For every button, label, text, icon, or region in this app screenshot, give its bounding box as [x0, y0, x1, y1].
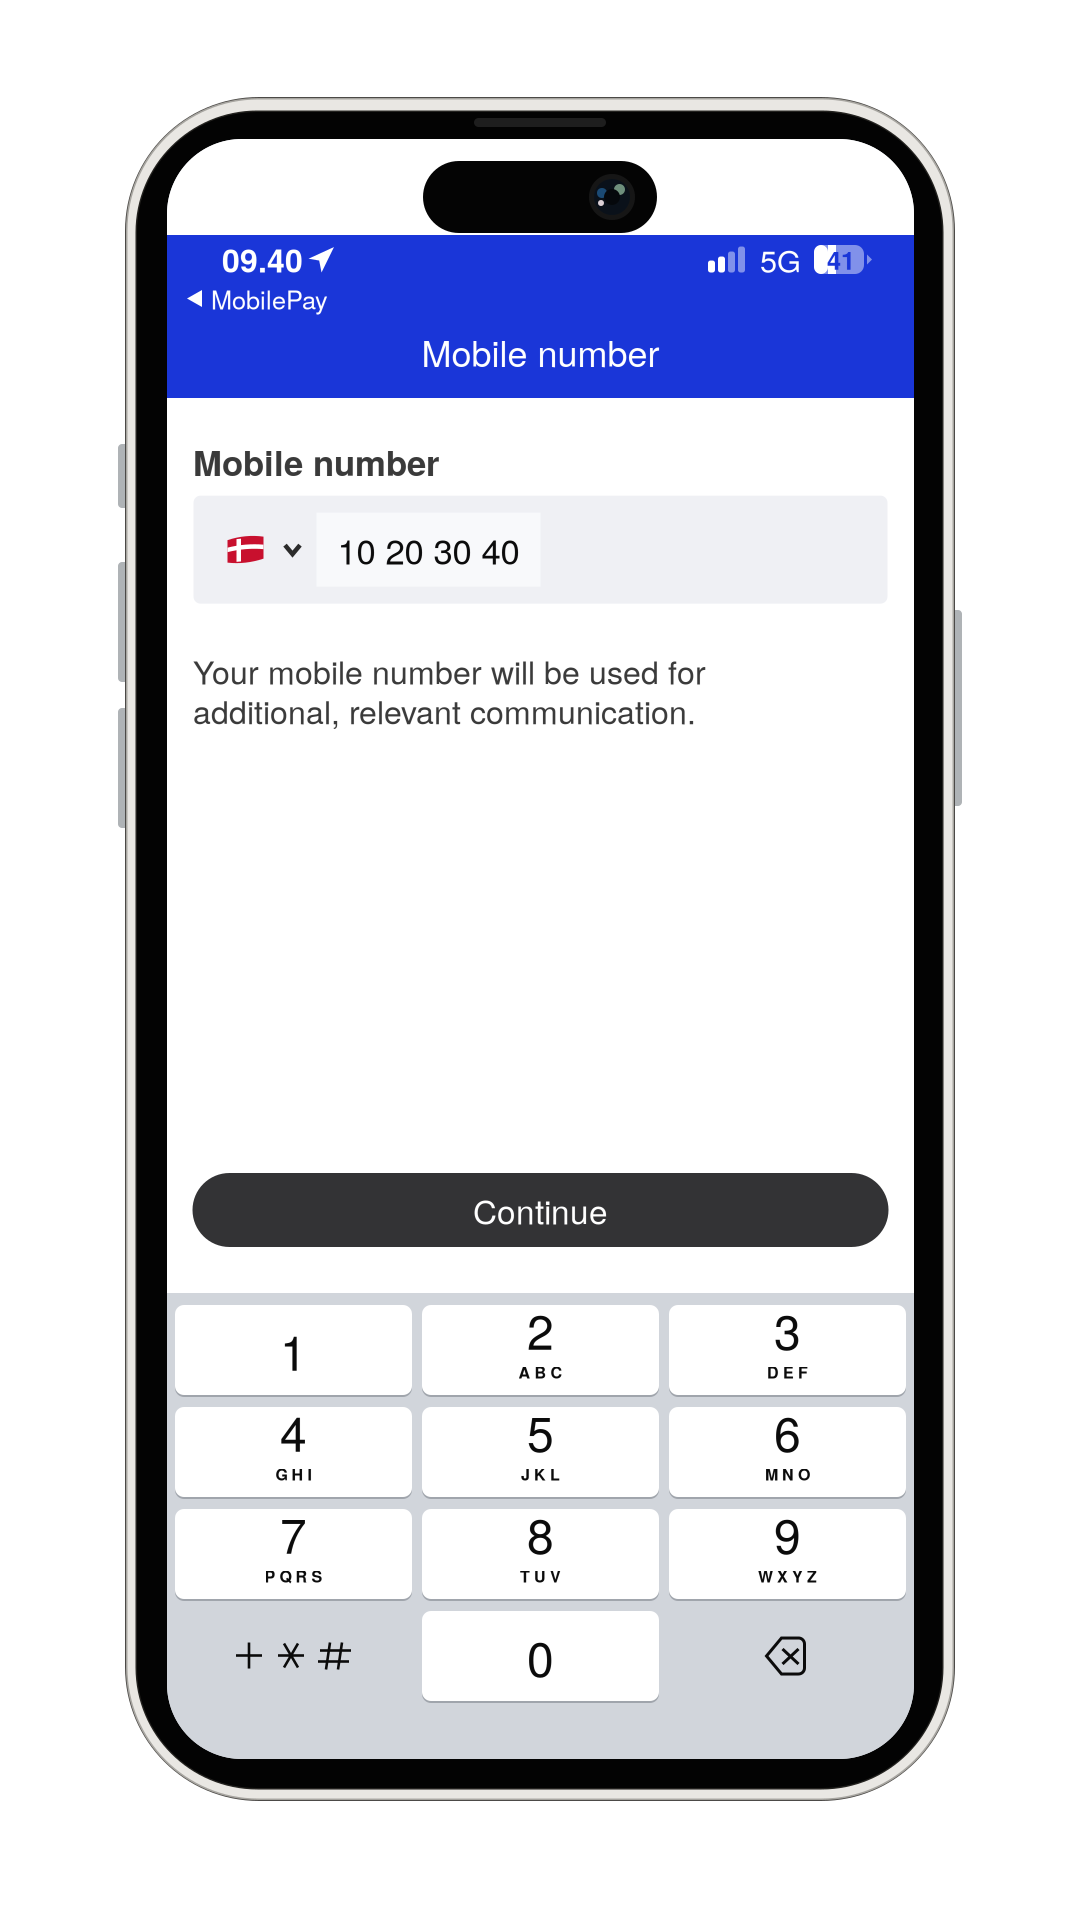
staticText: 0 [527, 1622, 554, 1690]
button[interactable]: 0 [422, 1611, 659, 1701]
staticText: D E F [767, 1360, 808, 1383]
staticText: Mobile number [193, 437, 439, 487]
button[interactable]: 10 20 30 40 [193, 496, 887, 604]
staticText: 7 [280, 1499, 307, 1567]
staticText: 1 [280, 1316, 307, 1384]
staticText: 10 20 30 40 [337, 525, 519, 574]
staticText: M N O [765, 1462, 810, 1485]
staticText: G H I [275, 1462, 311, 1485]
staticText: 4 [280, 1397, 307, 1465]
button[interactable]: 7 [175, 1509, 412, 1599]
staticText: MobilePay [211, 280, 328, 317]
button[interactable]: 9 [669, 1509, 906, 1599]
staticText: 3 [774, 1295, 801, 1363]
staticText: J K L [521, 1462, 560, 1485]
button[interactable]: 5 [422, 1407, 659, 1497]
button[interactable]: 1 [175, 1305, 412, 1395]
button[interactable]: 4 [175, 1407, 412, 1497]
button[interactable]: 3 [669, 1305, 906, 1395]
staticText: W X Y Z [758, 1564, 817, 1587]
staticText: A B C [518, 1360, 562, 1383]
staticText: 41 [827, 241, 855, 278]
button[interactable]: 8 [422, 1509, 659, 1599]
staticText: T U V [520, 1564, 561, 1587]
staticText: 9 [774, 1499, 801, 1567]
staticText: Continue [473, 1186, 608, 1234]
button[interactable]: 2 [422, 1305, 659, 1395]
button[interactable]: 6 [669, 1407, 906, 1497]
button[interactable]: Symbols [175, 1611, 412, 1701]
button[interactable]: Continue [192, 1173, 888, 1247]
staticText: 8 [527, 1499, 554, 1567]
staticText: P Q R S [264, 1564, 322, 1587]
staticText: 2 [527, 1295, 554, 1363]
button[interactable]: MobilePay [167, 284, 328, 313]
staticText: 5G [760, 237, 801, 281]
staticText: Mobile number [421, 326, 659, 377]
staticText: 09.40 [222, 237, 303, 282]
button[interactable]: Delete [669, 1611, 906, 1701]
staticText: 5 [527, 1397, 554, 1465]
staticText: 6 [774, 1397, 801, 1465]
staticText: Your mobile number will be used for addi… [193, 648, 706, 733]
